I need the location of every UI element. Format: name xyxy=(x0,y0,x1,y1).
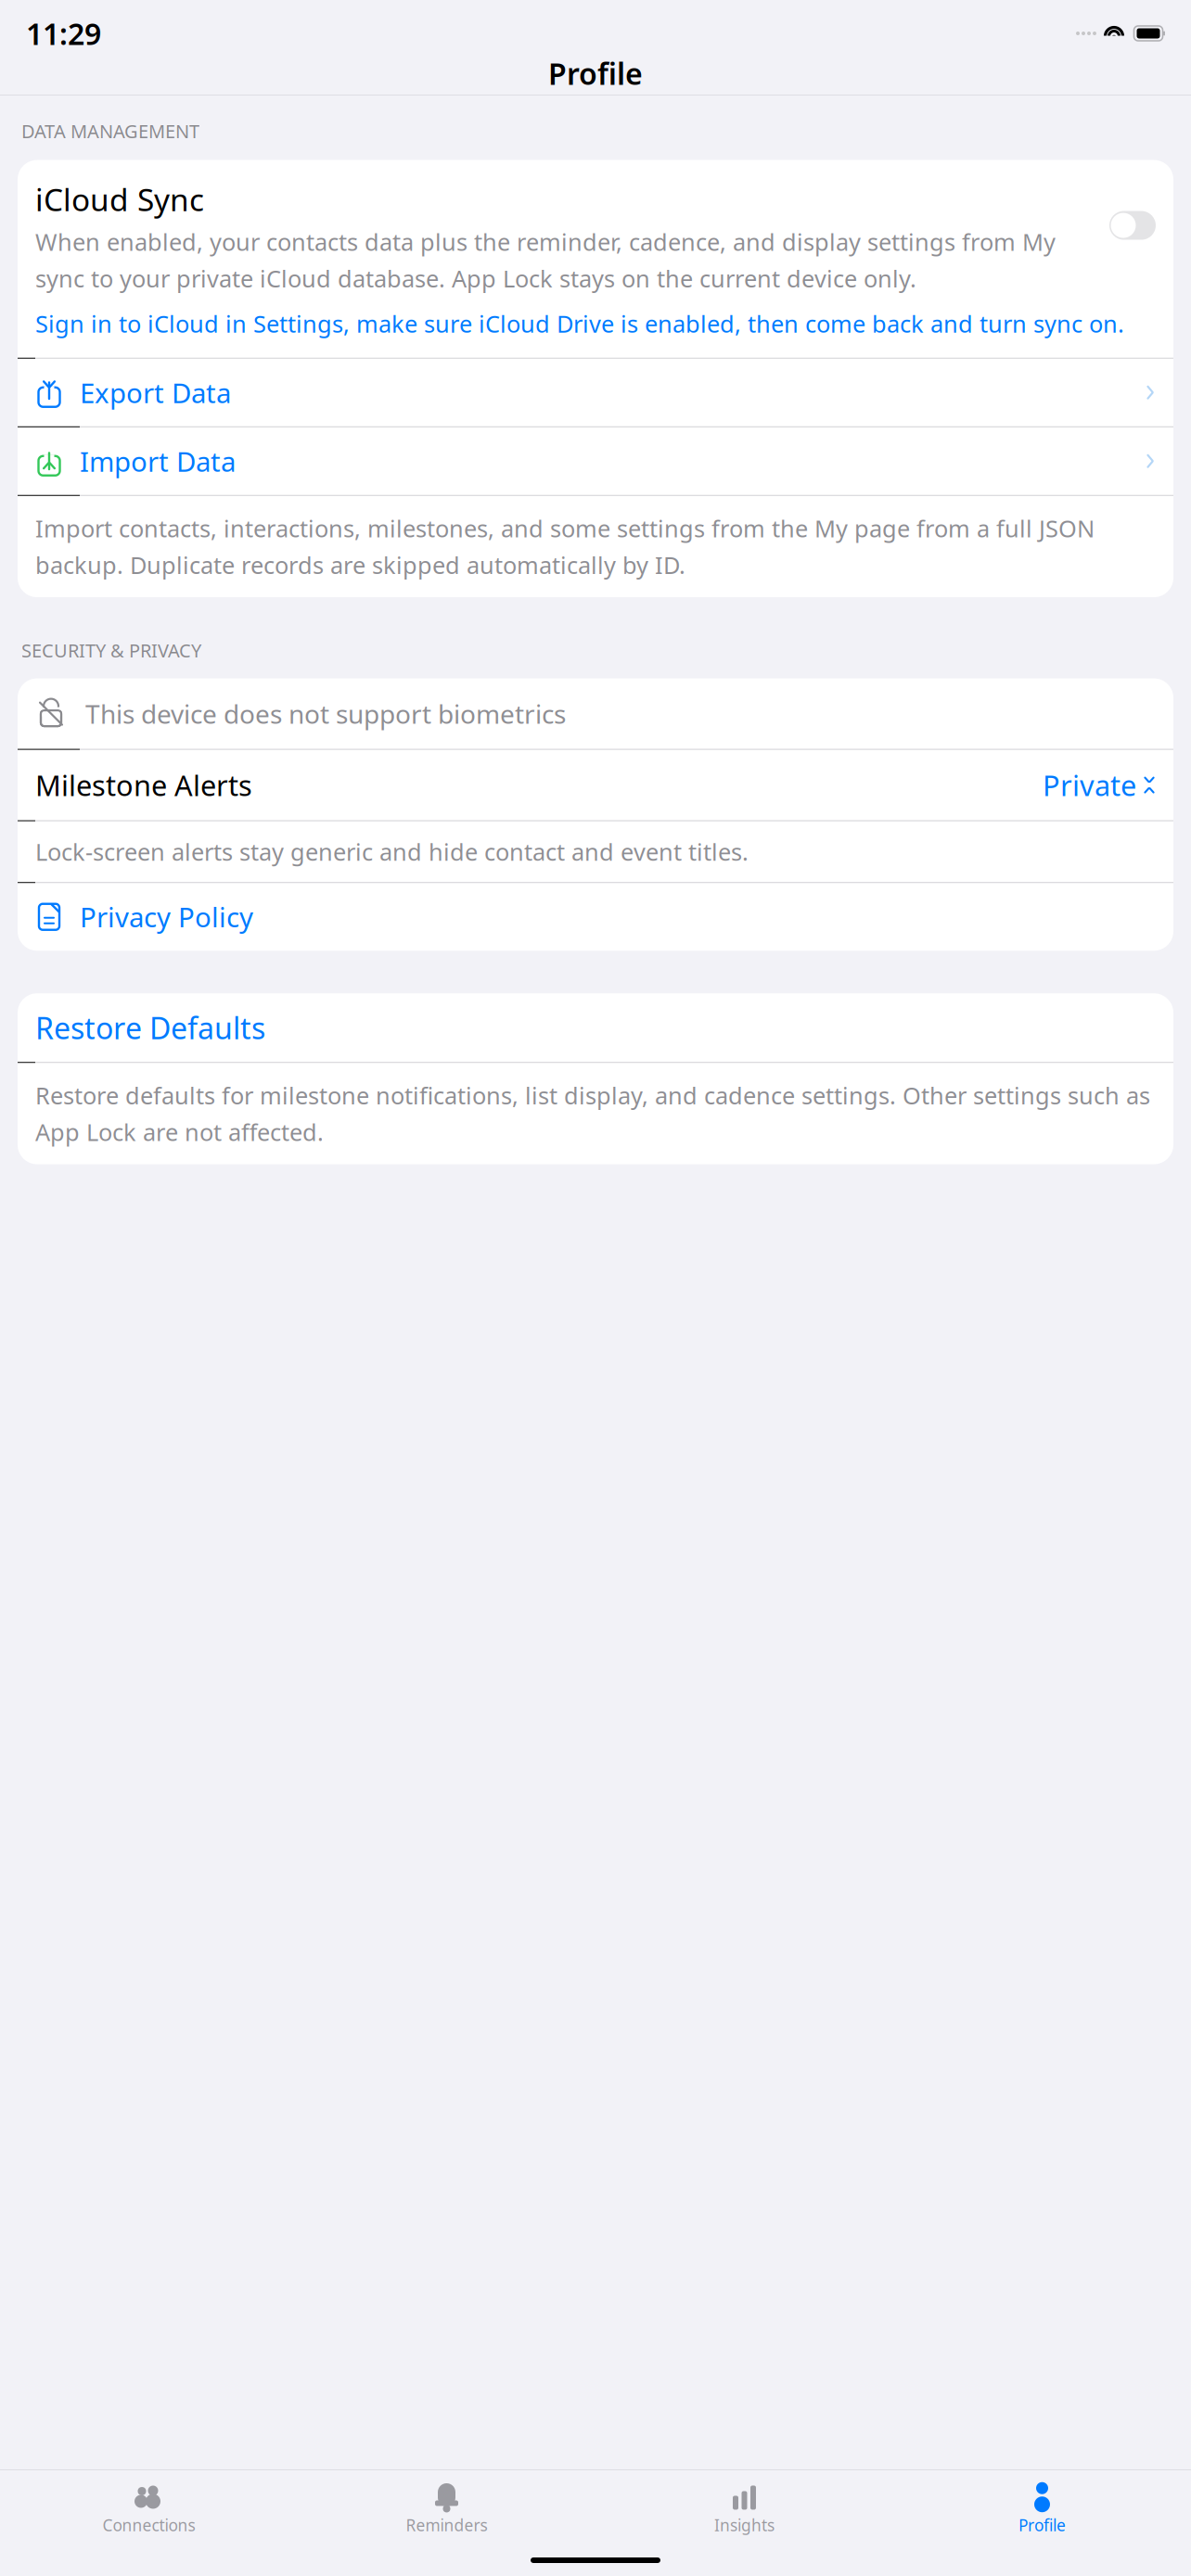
staticText: Lock-screen alerts stay generic and hide… xyxy=(35,836,749,867)
staticText: Import contacts, interactions, milestone… xyxy=(35,513,1095,580)
staticText: Restore defaults for milestone notificat… xyxy=(35,1080,1150,1148)
button[interactable]: Import Data xyxy=(18,427,1173,495)
staticText: 11:29 xyxy=(26,14,101,53)
staticText: Private xyxy=(1043,766,1136,804)
staticText: Export Data xyxy=(80,374,231,411)
staticText: Import Data xyxy=(80,443,236,479)
button[interactable]: Profile xyxy=(893,2475,1191,2539)
staticText: DATA MANAGEMENT xyxy=(21,119,199,143)
staticText: Insights xyxy=(714,2514,775,2536)
button[interactable]: Restore Defaults xyxy=(18,993,1173,1062)
staticText: Profile xyxy=(1018,2514,1066,2536)
staticText: Sign in to iCloud in Settings, make sure… xyxy=(35,308,1124,339)
button[interactable]: Privacy Policy xyxy=(18,883,1173,951)
button[interactable]: Insights xyxy=(595,2475,893,2539)
button[interactable]: Reminders xyxy=(298,2475,595,2539)
staticText: Restore Defaults xyxy=(35,1008,265,1047)
staticText: When enabled, your contacts data plus th… xyxy=(35,226,1056,294)
staticText: Connections xyxy=(102,2514,195,2536)
button[interactable]: Milestone Alerts xyxy=(18,750,1173,820)
staticText: This device does not support biometrics xyxy=(85,696,566,731)
staticText: Privacy Policy xyxy=(80,899,253,935)
staticText: Profile xyxy=(548,54,643,93)
staticText: SECURITY & PRIVACY xyxy=(21,638,201,663)
button[interactable]: Export Data xyxy=(18,359,1173,426)
button[interactable]: iCloud Sync xyxy=(1109,211,1156,240)
staticText: Reminders xyxy=(406,2514,487,2536)
staticText: iCloud Sync xyxy=(35,179,204,220)
button[interactable]: Connections xyxy=(0,2475,298,2539)
staticText: Milestone Alerts xyxy=(35,766,252,804)
